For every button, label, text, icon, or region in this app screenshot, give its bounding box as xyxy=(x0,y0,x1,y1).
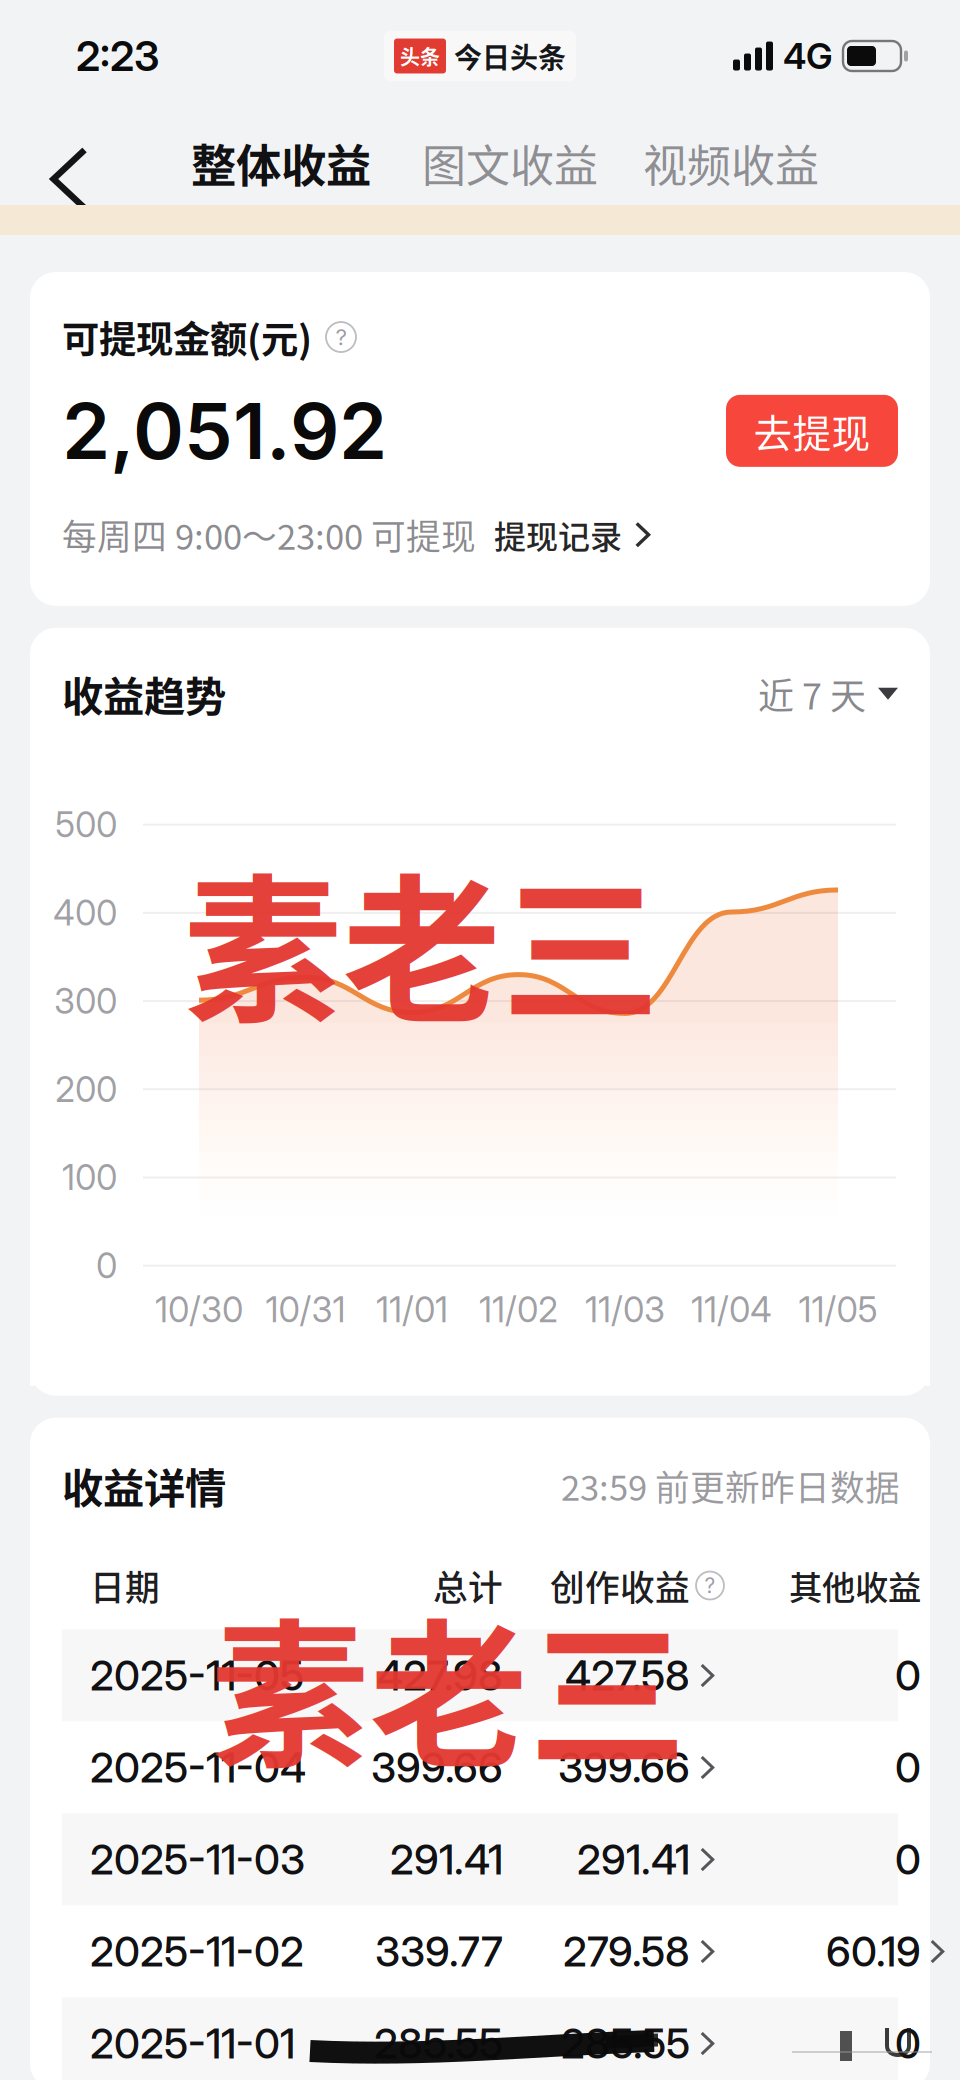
staticText: 整体收益 xyxy=(191,130,371,196)
staticText: 11/04 xyxy=(691,1289,772,1331)
staticText: 收益趋势 xyxy=(62,664,226,724)
staticText: 2025-11-05 xyxy=(90,1650,304,1700)
button[interactable]: 返回 xyxy=(27,132,110,226)
staticText: 11/05 xyxy=(798,1289,877,1331)
staticText: 视频收益 xyxy=(643,131,819,195)
staticText: 100 xyxy=(62,1156,117,1198)
staticText: 2025-11-04 xyxy=(90,1742,306,1792)
staticText: 285.55 xyxy=(374,2018,503,2068)
staticText: 500 xyxy=(55,804,117,846)
staticText: 399.66 xyxy=(371,1742,503,1792)
staticText: 近 7 天 xyxy=(758,668,866,720)
staticText: 11/03 xyxy=(585,1289,665,1331)
button[interactable]: 去提现 xyxy=(726,395,898,467)
staticText: 339.77 xyxy=(375,1926,503,1976)
staticText: 2:23 xyxy=(76,31,159,81)
button[interactable]: 2025-11-01 xyxy=(30,1997,930,2080)
staticText: 0 xyxy=(895,2018,921,2068)
staticText: 291.41 xyxy=(577,1834,690,1884)
staticText: 399.66 xyxy=(558,1742,690,1792)
staticText: 每周四 9:00～23:00 可提现 xyxy=(62,510,476,560)
button[interactable]: 2025-11-02 xyxy=(30,1905,930,1997)
staticText: 2025-11-01 xyxy=(90,2018,295,2068)
button[interactable]: 整体收益 xyxy=(181,114,381,212)
staticText: 2025-11-03 xyxy=(90,1834,305,1884)
staticText: 2,051.92 xyxy=(62,384,387,478)
staticText: 11/01 xyxy=(376,1289,448,1331)
staticText: 300 xyxy=(54,980,117,1022)
staticText: 291.41 xyxy=(390,1834,503,1884)
staticText: 提现记录 xyxy=(494,512,622,558)
button[interactable]: 近 7 天 xyxy=(758,668,898,720)
staticText: 4G xyxy=(783,34,833,78)
staticText: 可提现金额(元) xyxy=(62,310,312,364)
staticText: 其他收益 xyxy=(789,1561,921,1610)
staticText: 23:59 前更新昨日数据 xyxy=(561,1460,900,1511)
staticText: 0 xyxy=(895,1834,921,1884)
staticText: ? xyxy=(704,1573,715,1598)
button[interactable]: 金额说明 xyxy=(326,322,356,352)
staticText: 日期 xyxy=(90,1560,160,1611)
staticText: 素老三 xyxy=(183,825,660,1055)
staticText: 200 xyxy=(55,1068,117,1110)
button[interactable]: 2025-11-04 xyxy=(30,1721,930,1813)
staticText: 2025-11-02 xyxy=(90,1926,304,1976)
staticText: 60.19 xyxy=(826,1926,921,1976)
staticText: 11/02 xyxy=(479,1289,558,1331)
button[interactable]: 提现记录 xyxy=(494,512,653,558)
staticText: 图文收益 xyxy=(422,131,598,195)
staticText: 今日头条 xyxy=(454,36,566,76)
staticText: 总计 xyxy=(433,1560,503,1611)
staticText: 去提现 xyxy=(753,403,870,459)
staticText: 头条 xyxy=(400,41,440,70)
staticText: 427.58 xyxy=(565,1650,690,1700)
staticText: 0 xyxy=(96,1245,117,1287)
staticText: 285.55 xyxy=(561,2018,690,2068)
button[interactable]: 视频收益 xyxy=(633,115,829,211)
staticText: 400 xyxy=(53,892,117,934)
button[interactable]: 2025-11-03 xyxy=(30,1813,930,1905)
staticText: ? xyxy=(335,323,346,351)
staticText: 10/30 xyxy=(155,1289,243,1331)
staticText: 10/31 xyxy=(265,1289,345,1331)
staticText: 279.58 xyxy=(563,1926,690,1976)
staticText: 427.98 xyxy=(377,1650,503,1700)
staticText: 0 xyxy=(895,1742,921,1792)
staticText: 创作收益 xyxy=(550,1560,690,1611)
staticText: 0 xyxy=(895,1650,921,1700)
staticText: 素老三 xyxy=(210,1570,687,1800)
button[interactable]: 图文收益 xyxy=(412,115,608,211)
staticText: 收益详情 xyxy=(62,1456,226,1516)
button[interactable]: 2025-11-05 xyxy=(30,1629,930,1721)
